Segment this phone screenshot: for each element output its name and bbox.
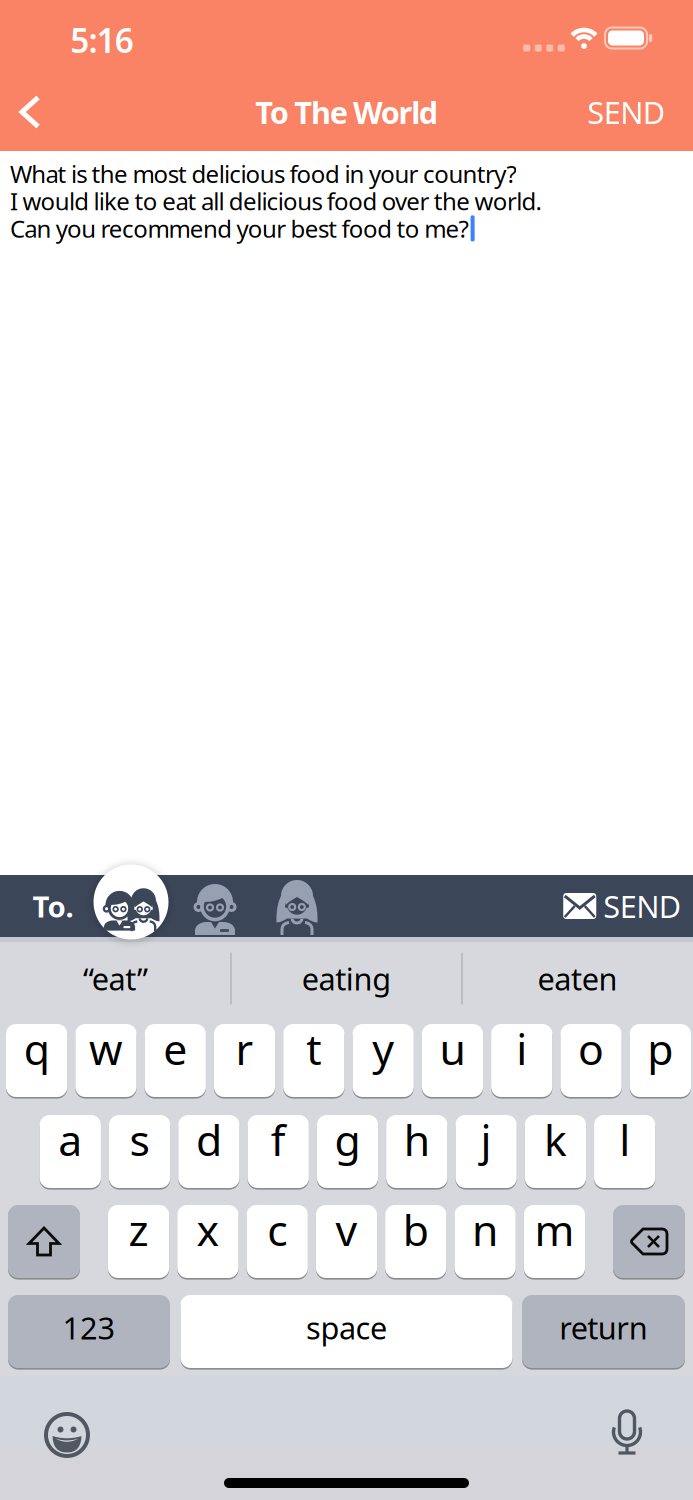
- staticText: space: [306, 1307, 387, 1348]
- staticText: p: [647, 1020, 673, 1077]
- button[interactable]: t: [283, 1024, 344, 1097]
- button[interactable]: eating: [232, 937, 461, 1020]
- staticText: s: [130, 1111, 150, 1168]
- button[interactable]: g: [317, 1115, 378, 1188]
- button[interactable]: s: [109, 1115, 170, 1188]
- button[interactable]: SEND: [563, 886, 681, 926]
- button[interactable]: Delete: [613, 1205, 685, 1278]
- staticText: g: [334, 1111, 360, 1168]
- staticText: What is the most delicious food in your …: [10, 158, 516, 190]
- button[interactable]: Dictation: [603, 1404, 651, 1464]
- staticText: Can you recommend your best food to me?: [10, 212, 469, 244]
- staticText: To.: [32, 886, 73, 925]
- button[interactable]: Girl recipient: [274, 877, 320, 935]
- button[interactable]: w: [75, 1024, 137, 1097]
- button[interactable]: h: [386, 1115, 447, 1188]
- button[interactable]: d: [178, 1115, 239, 1188]
- button[interactable]: o: [560, 1024, 622, 1097]
- staticText: r: [235, 1020, 253, 1077]
- button[interactable]: r: [214, 1024, 275, 1097]
- button[interactable]: u: [422, 1024, 483, 1097]
- staticText: k: [544, 1111, 567, 1168]
- button[interactable]: i: [491, 1024, 552, 1097]
- staticText: l: [619, 1111, 630, 1168]
- button[interactable]: f: [247, 1115, 309, 1188]
- button[interactable]: k: [525, 1115, 586, 1188]
- staticText: 5:16: [70, 18, 134, 62]
- staticText: c: [267, 1201, 287, 1258]
- button[interactable]: n: [454, 1205, 516, 1278]
- staticText: j: [481, 1111, 492, 1168]
- button[interactable]: Shift: [8, 1205, 80, 1278]
- staticText: eating: [302, 958, 391, 999]
- staticText: z: [129, 1201, 149, 1258]
- button[interactable]: return: [522, 1295, 685, 1368]
- staticText: i: [516, 1020, 527, 1077]
- button[interactable]: y: [352, 1024, 414, 1097]
- staticText: m: [534, 1201, 574, 1258]
- staticText: d: [196, 1111, 222, 1168]
- button[interactable]: Boy recipient: [193, 877, 237, 935]
- staticText: return: [559, 1307, 648, 1348]
- staticText: I would like to eat all delicious food o…: [10, 185, 542, 217]
- button[interactable]: p: [630, 1024, 691, 1097]
- staticText: SEND: [603, 886, 681, 926]
- staticText: To The World: [255, 92, 438, 132]
- button[interactable]: x: [177, 1205, 238, 1278]
- staticText: w: [89, 1020, 123, 1077]
- button[interactable]: m: [524, 1205, 585, 1278]
- staticText: u: [439, 1020, 465, 1077]
- button[interactable]: q: [6, 1024, 67, 1097]
- staticText: b: [403, 1201, 429, 1258]
- staticText: o: [578, 1020, 604, 1077]
- button[interactable]: l: [594, 1115, 655, 1188]
- staticText: t: [306, 1020, 321, 1077]
- button[interactable]: Emoji: [37, 1405, 97, 1465]
- button[interactable]: c: [246, 1205, 308, 1278]
- button[interactable]: z: [108, 1205, 169, 1278]
- button[interactable]: 123: [8, 1295, 170, 1368]
- button[interactable]: “eat”: [1, 937, 230, 1020]
- staticText: n: [472, 1201, 498, 1258]
- staticText: eaten: [538, 958, 617, 999]
- button[interactable]: a: [40, 1115, 101, 1188]
- button[interactable]: SEND: [587, 92, 665, 132]
- button[interactable]: e: [145, 1024, 206, 1097]
- button[interactable]: j: [455, 1115, 517, 1188]
- staticText: f: [271, 1111, 286, 1168]
- staticText: a: [58, 1111, 82, 1168]
- staticText: “eat”: [83, 958, 148, 999]
- button[interactable]: v: [316, 1205, 377, 1278]
- button[interactable]: To The World recipients: [93, 864, 168, 939]
- staticText: x: [196, 1201, 219, 1258]
- staticText: q: [24, 1020, 50, 1077]
- button[interactable]: b: [385, 1205, 446, 1278]
- staticText: SEND: [587, 92, 665, 132]
- button[interactable]: eaten: [463, 937, 692, 1020]
- staticText: v: [335, 1201, 357, 1258]
- button[interactable]: space: [180, 1295, 512, 1368]
- staticText: h: [404, 1111, 430, 1168]
- staticText: 123: [62, 1307, 115, 1348]
- button[interactable]: Back: [2, 84, 58, 140]
- staticText: y: [372, 1020, 394, 1077]
- staticText: e: [163, 1020, 187, 1077]
